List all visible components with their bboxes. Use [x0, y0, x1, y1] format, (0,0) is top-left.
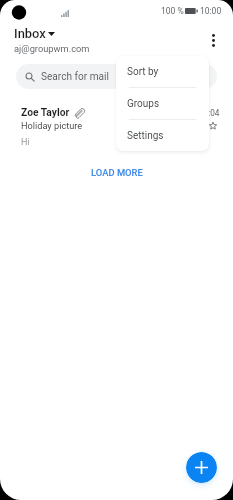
staticText: Sort by	[127, 66, 159, 78]
staticText: aj@groupwm.com	[14, 43, 90, 54]
button[interactable]: Groups	[116, 88, 209, 119]
staticText: Hi	[21, 137, 30, 148]
staticText: Search for mail	[41, 71, 109, 83]
button[interactable]: Zoe Taylor	[0, 98, 233, 146]
button[interactable]: Settings	[116, 120, 209, 151]
button[interactable]: LOAD MORE	[81, 164, 153, 181]
staticText: LOAD MORE	[91, 167, 143, 178]
button[interactable]: Sort by	[116, 56, 209, 87]
staticText: 14:04	[199, 108, 220, 118]
staticText: 100 %	[161, 6, 184, 16]
staticText: Inbox	[14, 26, 46, 41]
staticText: Settings	[127, 130, 164, 142]
staticText: Holiday picture	[21, 120, 83, 131]
staticText: Zoe Taylor	[21, 106, 70, 118]
button[interactable]: Search for mail	[16, 64, 217, 89]
button[interactable]: Compose	[186, 452, 217, 483]
staticText: Groups	[127, 98, 160, 110]
staticText: 10:00	[200, 6, 222, 16]
button[interactable]: More options	[202, 29, 225, 52]
